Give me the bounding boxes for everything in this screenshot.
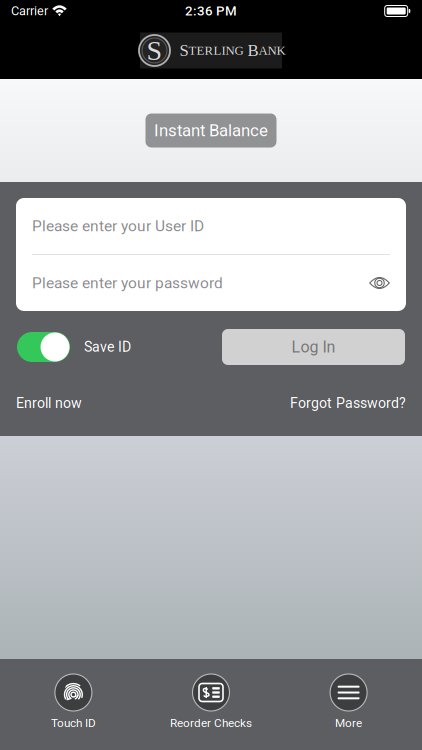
staticText: TERLING — [188, 43, 243, 58]
button[interactable]: Log In — [222, 329, 405, 365]
staticText: 2:36 PM — [185, 3, 237, 19]
button[interactable]: Save ID — [17, 332, 131, 362]
staticText: Forgot Password? — [290, 395, 406, 412]
button[interactable]: Please enter your User ID — [16, 198, 406, 254]
staticText: Log In — [291, 338, 335, 356]
staticText: Please enter your User ID — [32, 217, 204, 235]
staticText: Please enter your password — [32, 274, 223, 292]
staticText: ANK — [258, 43, 285, 58]
staticText: B — [243, 41, 258, 60]
button[interactable]: Please enter your password — [16, 255, 406, 311]
staticText: Touch ID — [51, 716, 96, 730]
staticText: Save ID — [84, 339, 131, 355]
button[interactable]: Forgot Password? — [290, 395, 406, 412]
staticText: S — [146, 35, 162, 66]
button[interactable]: More — [280, 674, 417, 730]
staticText: More — [335, 716, 362, 730]
staticText: Reorder Checks — [170, 716, 252, 730]
button[interactable]: Touch ID — [5, 674, 142, 730]
staticText: Carrier — [11, 4, 48, 18]
button[interactable]: Enroll now — [16, 395, 82, 412]
button[interactable]: Instant Balance — [145, 113, 276, 147]
button[interactable]: Reorder Checks — [142, 674, 280, 730]
staticText: Instant Balance — [154, 121, 268, 140]
staticText: Enroll now — [16, 395, 82, 412]
staticText: S — [179, 41, 188, 60]
